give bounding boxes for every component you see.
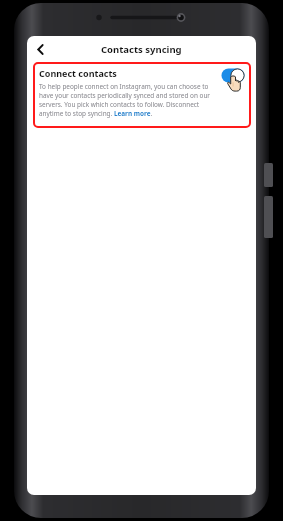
staticText: Connect contacts (39, 67, 117, 79)
staticText: To help people connect on Instagram, you… (39, 82, 218, 118)
button[interactable]: Connect contacts (33, 62, 251, 128)
staticText: Contacts syncing (101, 43, 182, 56)
button[interactable]: Connect contacts toggle, on (221, 67, 247, 107)
button[interactable]: Back (29, 38, 51, 60)
